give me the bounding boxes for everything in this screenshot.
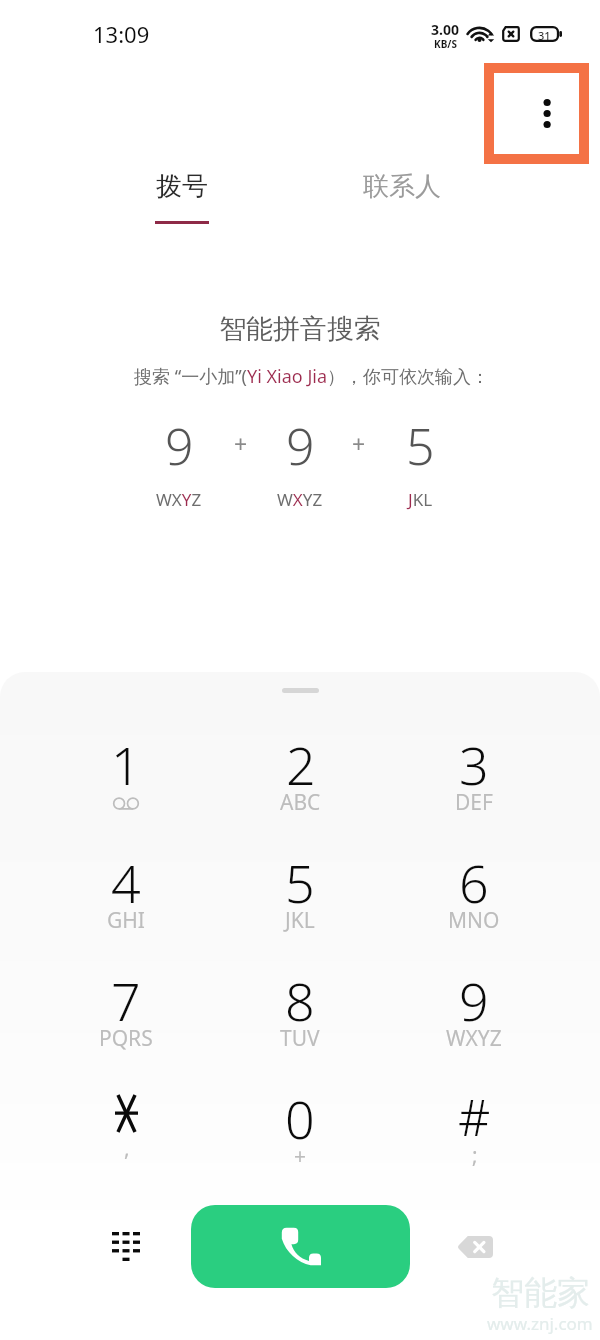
staticText: 智能家 <box>491 1272 590 1314</box>
button[interactable]: 8 <box>213 965 387 1083</box>
staticText: PQRS <box>99 1024 153 1053</box>
staticText: 9 <box>286 412 315 480</box>
button[interactable]: 6 <box>387 847 561 965</box>
staticText: , <box>124 1134 130 1163</box>
staticText: 搜索 “一小加”(Yi Xiao Jia），你可依次输入： <box>134 364 490 389</box>
staticText: # <box>458 1083 491 1151</box>
staticText: JKL <box>285 906 315 935</box>
staticText: + <box>352 428 366 459</box>
staticText: KB/S <box>434 37 457 51</box>
staticText: + <box>294 1142 307 1171</box>
staticText: 8 <box>285 965 315 1036</box>
button[interactable]: 7 <box>39 965 213 1083</box>
staticText: WXYZ <box>156 488 202 511</box>
staticText: 6 <box>459 847 489 918</box>
staticText: 13:09 <box>93 19 150 49</box>
button[interactable]: 9 <box>387 965 561 1083</box>
button[interactable]: 0 <box>213 1083 387 1201</box>
button[interactable]: 联系人 <box>312 160 492 240</box>
button[interactable]: 3 <box>387 729 561 847</box>
staticText: JKL <box>408 488 433 511</box>
staticText: 31 <box>538 28 551 43</box>
button[interactable]: 拨号 <box>92 160 272 240</box>
staticText: 3 <box>459 729 489 800</box>
staticText: + <box>234 428 248 459</box>
button[interactable]: Backspace <box>440 1212 510 1282</box>
button[interactable]: , <box>39 1083 213 1201</box>
button[interactable]: Keypad <box>96 1216 156 1276</box>
staticText: TUV <box>280 1024 320 1053</box>
staticText: 2 <box>286 729 316 800</box>
button[interactable]: 5 <box>213 847 387 965</box>
button[interactable]: 2 <box>213 729 387 847</box>
staticText: WXYZ <box>277 488 323 511</box>
button[interactable]: More options <box>484 63 589 164</box>
staticText: 5 <box>285 847 315 918</box>
staticText: 0 <box>285 1083 315 1154</box>
staticText: DEF <box>455 788 493 817</box>
staticText: www.znj.com <box>487 1312 593 1335</box>
staticText: 智能拼音搜索 <box>219 312 381 346</box>
staticText: 3.00 <box>431 20 459 39</box>
button[interactable]: 1 <box>39 729 213 847</box>
staticText: MNO <box>448 906 500 935</box>
staticText: 1 <box>111 729 141 800</box>
staticText: ; <box>472 1141 478 1170</box>
button[interactable]: # <box>387 1083 561 1201</box>
staticText: 5 <box>406 412 435 480</box>
staticText: 联系人 <box>363 170 441 203</box>
staticText: 7 <box>111 965 141 1036</box>
staticText: WXYZ <box>446 1024 502 1053</box>
staticText: GHI <box>107 906 145 935</box>
staticText: 拨号 <box>156 170 208 203</box>
staticText: 4 <box>111 847 141 918</box>
staticText: ABC <box>280 788 321 817</box>
staticText: 9 <box>459 965 489 1036</box>
button[interactable]: Call <box>191 1205 410 1288</box>
staticText: 9 <box>165 412 194 480</box>
button[interactable]: 4 <box>39 847 213 965</box>
